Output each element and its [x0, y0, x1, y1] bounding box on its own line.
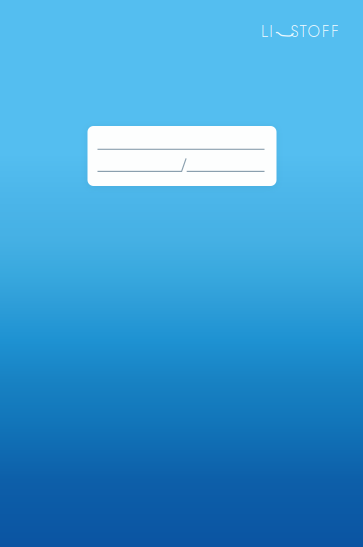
staticText: O	[308, 20, 321, 43]
staticText: S	[290, 20, 298, 43]
staticText: T	[299, 20, 306, 43]
staticText: F	[322, 20, 330, 43]
staticText: F	[331, 20, 339, 43]
staticText: I	[269, 20, 273, 43]
staticText: L	[261, 20, 268, 43]
button[interactable]: Listoff	[261, 20, 339, 43]
